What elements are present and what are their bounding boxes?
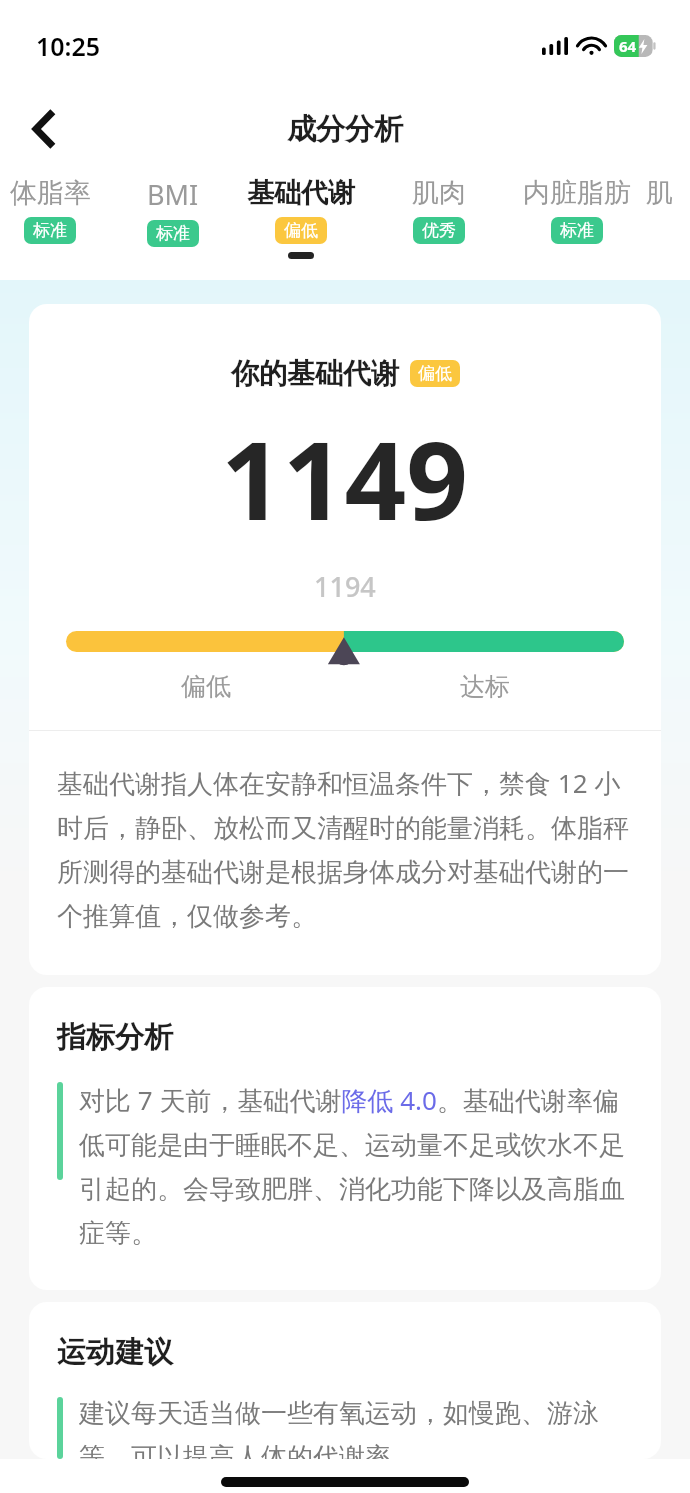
staticText: 偏低 xyxy=(181,671,231,702)
button[interactable]: 基础代谢 xyxy=(232,170,370,259)
button[interactable]: Back xyxy=(18,103,70,155)
staticText: 基础代谢指人体在安静和恒温条件下，禁食 12 小时后，静卧、放松而又清醒时的能量… xyxy=(57,765,633,933)
staticText: 体脂率 xyxy=(10,176,91,210)
button[interactable]: 肌肉 xyxy=(370,170,508,252)
staticText: 10:25 xyxy=(36,29,101,63)
staticText: 64 xyxy=(619,36,637,56)
button[interactable]: 体脂率 xyxy=(0,170,114,252)
staticText: 内脏脂肪 xyxy=(523,176,631,210)
button[interactable]: BMI xyxy=(114,170,232,255)
staticText: 建议每天适当做一些有氧运动，如慢跑、游泳等，可以提高人体的代谢率。 xyxy=(79,1397,639,1459)
staticText: 标准 xyxy=(33,220,67,241)
staticText: 偏低 xyxy=(284,220,318,241)
staticText: 指标分析 xyxy=(57,1019,173,1056)
staticText: 标准 xyxy=(156,223,190,244)
staticText: 你的基础代谢 xyxy=(231,356,399,391)
staticText: 运动建议 xyxy=(57,1334,173,1371)
staticText: 偏低 xyxy=(418,363,452,384)
staticText: 对比 7 天前，基础代谢降低 4.0。基础代谢率偏低可能是由于睡眠不足、运动量不… xyxy=(79,1082,639,1250)
button[interactable]: 内脏脂肪 xyxy=(508,170,646,252)
staticText: 标准 xyxy=(560,220,594,241)
staticText: 1149 xyxy=(221,405,469,552)
staticText: 基础代谢 xyxy=(247,176,355,210)
staticText: 成分分析 xyxy=(287,111,403,148)
staticText: BMI xyxy=(147,176,199,213)
button[interactable]: 指标分析 xyxy=(29,987,661,1290)
staticText: 1194 xyxy=(314,568,376,605)
staticText: 肌 xyxy=(646,176,673,210)
staticText: 达标 xyxy=(460,671,510,702)
staticText: 肌肉 xyxy=(412,176,466,210)
button[interactable]: 运动建议 xyxy=(29,1302,661,1459)
staticText: 优秀 xyxy=(422,220,456,241)
button[interactable]: 你的基础代谢 xyxy=(29,304,661,975)
